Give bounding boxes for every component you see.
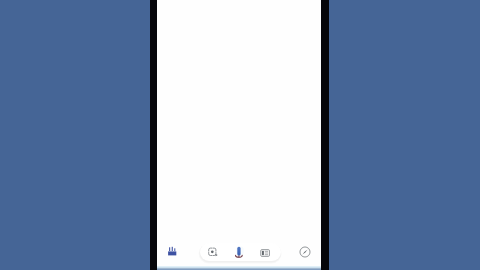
button[interactable]: Search with Lens (203, 242, 222, 261)
button[interactable]: Discover (161, 240, 183, 262)
button[interactable]: Translate (255, 242, 274, 261)
button[interactable]: Explore (295, 242, 314, 261)
button[interactable]: Voice search (230, 242, 250, 262)
